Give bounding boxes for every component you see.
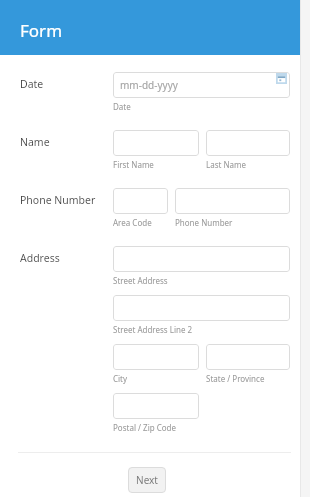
button[interactable] [113, 344, 199, 370]
staticText: Street Address [113, 275, 168, 286]
button[interactable]: Next [128, 467, 166, 493]
staticText: Street Address Line 2 [113, 324, 193, 335]
staticText: Name [20, 135, 50, 149]
staticText: Date [20, 77, 44, 91]
staticText: Phone Number [20, 193, 96, 207]
staticText: mm-dd-yyyy [120, 78, 178, 92]
staticText: First Name [113, 159, 154, 170]
button[interactable] [113, 295, 290, 321]
staticText: Phone Number [175, 217, 233, 228]
staticText: State / Province [206, 373, 265, 384]
staticText: Last Name [206, 159, 247, 170]
button[interactable] [113, 246, 290, 272]
staticText: Form [20, 19, 63, 42]
staticText: City [113, 373, 128, 384]
staticText: Address [20, 251, 60, 265]
button[interactable] [113, 130, 199, 156]
button[interactable] [175, 188, 290, 214]
button[interactable] [113, 188, 168, 214]
button[interactable]: mm-dd-yyyy [113, 72, 290, 98]
staticText: Area Code [113, 217, 152, 228]
button[interactable] [113, 393, 199, 419]
staticText: Next [136, 473, 158, 487]
button[interactable]: Open calendar picker [276, 73, 287, 84]
staticText: Postal / Zip Code [113, 422, 177, 433]
staticText: Date [113, 101, 131, 112]
button[interactable] [206, 344, 290, 370]
button[interactable] [206, 130, 290, 156]
